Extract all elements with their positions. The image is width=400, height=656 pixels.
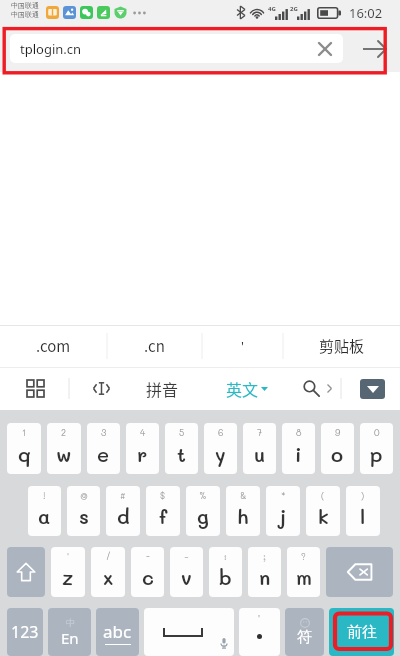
staticText: 前往 <box>347 623 377 642</box>
button[interactable]: Move cursor <box>87 367 115 410</box>
button[interactable]: 7 <box>243 423 276 474</box>
button[interactable]: 剪贴板 <box>283 325 400 367</box>
button[interactable]: * <box>266 486 300 536</box>
staticText: abc <box>103 620 132 643</box>
button[interactable]: Switch language <box>48 608 91 656</box>
button[interactable]: Go <box>352 25 396 72</box>
staticText: 2G <box>290 5 298 13</box>
button[interactable]: 2 <box>47 423 81 474</box>
button[interactable]: ! <box>28 486 61 536</box>
staticText: 1 <box>22 427 27 439</box>
button[interactable]: 拼音 <box>144 367 180 410</box>
staticText: 剪贴板 <box>319 335 365 357</box>
button[interactable]: ; <box>248 547 281 597</box>
staticText: 6 <box>218 427 224 439</box>
button[interactable]: .com <box>0 325 107 367</box>
button[interactable]: 3 <box>87 423 120 474</box>
button[interactable]: Symbols <box>285 608 324 656</box>
button[interactable]: ? <box>287 547 320 597</box>
button[interactable]: tplogin.cn <box>10 34 343 63</box>
button[interactable]: & <box>226 486 260 536</box>
staticText: d <box>117 503 130 529</box>
staticText: w <box>56 441 72 467</box>
staticText: g <box>197 503 209 529</box>
button[interactable]: Keyboard layouts <box>21 367 49 410</box>
button[interactable]: ~ <box>170 547 203 597</box>
staticText: 16:02 <box>349 4 383 22</box>
staticText: l <box>360 503 366 529</box>
staticText: p <box>370 441 383 467</box>
button[interactable]: Shift <box>7 547 45 597</box>
staticText: ! <box>43 490 46 502</box>
staticText: e <box>97 441 110 467</box>
staticText: 123 <box>11 621 39 643</box>
button[interactable]: Period <box>239 608 280 656</box>
staticText: 8 <box>296 427 302 439</box>
button[interactable]: 英文 <box>226 367 268 410</box>
button[interactable]: Backspace <box>326 547 393 597</box>
staticText: a <box>38 503 51 529</box>
staticText: 2 <box>61 427 67 439</box>
button[interactable]: # <box>106 486 140 536</box>
staticText: ~ <box>184 551 189 563</box>
button[interactable]: 6 <box>204 423 237 474</box>
button[interactable]: 9 <box>321 423 354 474</box>
staticText: ) <box>361 490 365 502</box>
button[interactable]: Clear <box>316 40 334 58</box>
button[interactable]: 8 <box>282 423 315 474</box>
staticText: q <box>18 441 31 467</box>
staticText: ' <box>258 612 261 624</box>
button[interactable]: .cn <box>107 325 202 367</box>
button[interactable]: 5 <box>165 423 198 474</box>
staticText: 中 <box>66 617 75 628</box>
button[interactable]: Space <box>144 608 234 656</box>
staticText: m <box>296 564 312 590</box>
button[interactable]: Numbers <box>7 608 43 656</box>
staticText: f <box>159 503 168 529</box>
staticText: $ <box>160 490 166 502</box>
staticText: s <box>79 503 89 529</box>
staticText: h <box>237 503 249 529</box>
staticText: i <box>295 441 302 467</box>
staticText: & <box>240 490 247 502</box>
button[interactable]: @ <box>67 486 100 536</box>
staticText: 中国联通 <box>11 10 39 19</box>
button[interactable]: % <box>186 486 220 536</box>
button[interactable]: ( <box>306 486 340 536</box>
button[interactable]: Search <box>296 367 340 410</box>
button[interactable]: 前往 <box>329 608 394 656</box>
staticText: @ <box>80 490 88 502</box>
staticText: z <box>62 564 74 590</box>
button[interactable]: abc <box>96 608 139 656</box>
staticText: 0 <box>374 427 380 439</box>
staticText: 拼音 <box>146 377 179 400</box>
button[interactable]: : <box>209 547 242 597</box>
staticText: 5 <box>179 427 185 439</box>
staticText: - <box>146 551 150 563</box>
button[interactable]: ) <box>346 486 380 536</box>
staticText: ; <box>263 551 266 563</box>
button[interactable]: 1 <box>7 423 41 474</box>
staticText: j <box>279 503 287 529</box>
button[interactable]: ' <box>51 547 85 597</box>
staticText: t <box>177 441 186 467</box>
staticText: 7 <box>257 427 263 439</box>
staticText: tplogin.cn <box>20 40 82 58</box>
button[interactable]: 0 <box>360 423 393 474</box>
staticText: En <box>61 628 79 648</box>
staticText: 3 <box>101 427 107 439</box>
staticText: y <box>215 441 226 467</box>
button[interactable]: ' <box>202 325 283 367</box>
button[interactable]: - <box>131 547 164 597</box>
staticText: ? <box>301 551 306 563</box>
staticText: * <box>281 490 286 502</box>
staticText: 符 <box>297 628 312 647</box>
button[interactable]: 4 <box>126 423 159 474</box>
staticText: o <box>331 441 344 467</box>
staticText: 4G <box>268 5 276 13</box>
staticText: 9 <box>335 427 341 439</box>
staticText: b <box>219 564 232 590</box>
button[interactable]: / <box>91 547 125 597</box>
button[interactable]: Hide keyboard <box>352 367 392 410</box>
button[interactable]: $ <box>146 486 180 536</box>
